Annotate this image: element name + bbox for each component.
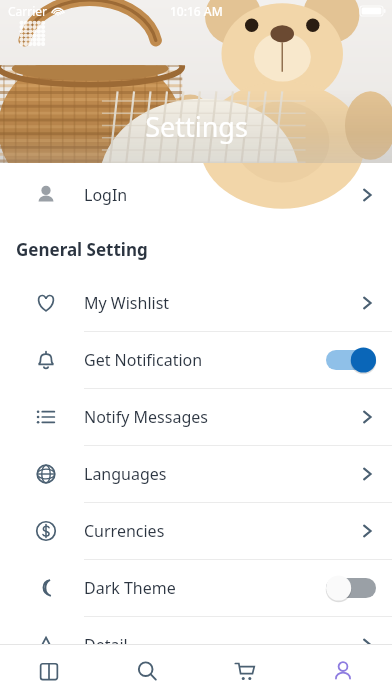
button[interactable]: Notify Messages: [0, 389, 392, 445]
staticText: Detail: [84, 634, 358, 656]
button[interactable]: Toggle off: [326, 574, 376, 602]
staticText: Settings: [145, 108, 248, 145]
staticText: General Setting: [16, 238, 148, 261]
button[interactable]: Dark Theme: [0, 560, 392, 616]
staticText: Dark Theme: [84, 577, 326, 599]
button[interactable]: Currencies: [0, 503, 392, 559]
button[interactable]: LogIn: [0, 163, 392, 226]
button[interactable]: Catalog: [0, 645, 98, 696]
staticText: Languages: [84, 463, 358, 485]
staticText: 10:16 AM: [170, 3, 223, 19]
staticText: Currencies: [84, 520, 358, 542]
button[interactable]: Toggle on: [326, 346, 376, 374]
staticText: Carrier: [8, 3, 48, 19]
button[interactable]: Detail: [0, 617, 392, 673]
staticText: Get Notification: [84, 349, 326, 371]
button[interactable]: My Wishlist: [0, 275, 392, 331]
button[interactable]: Get Notification: [0, 332, 392, 388]
staticText: My Wishlist: [84, 292, 358, 314]
button[interactable]: Search: [98, 645, 196, 696]
staticText: LogIn: [84, 184, 358, 206]
button[interactable]: Cart: [196, 645, 294, 696]
staticText: Notify Messages: [84, 406, 358, 428]
button[interactable]: Account: [294, 645, 392, 696]
button[interactable]: Languages: [0, 446, 392, 502]
